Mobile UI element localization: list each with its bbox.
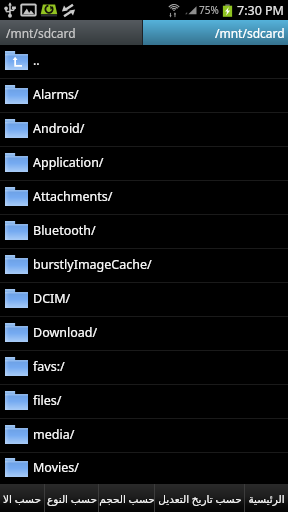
button[interactable]: Alarms/ — [0, 79, 288, 112]
button[interactable]: /mnt/sdcard — [0, 20, 142, 45]
staticText: /mnt/sdcard — [6, 25, 76, 41]
staticText: الرئيسية — [248, 493, 285, 505]
staticText: files/ — [33, 392, 62, 409]
button[interactable]: Bluetooth/ — [0, 215, 288, 248]
other: Data transfer active — [61, 3, 76, 18]
staticText: burstlyImageCache/ — [33, 256, 152, 273]
button[interactable]: Application/ — [0, 147, 288, 180]
button[interactable]: DCIM/ — [0, 283, 288, 316]
staticText: حسب الا — [3, 492, 41, 506]
button[interactable]: حسب الحجم — [99, 484, 154, 512]
button[interactable]: Android/ — [0, 113, 288, 146]
staticText: favs:/ — [33, 358, 65, 375]
staticText: Application/ — [33, 154, 104, 171]
staticText: .. — [33, 52, 40, 69]
other: Wi-Fi signal — [166, 3, 182, 18]
staticText: Attachments/ — [33, 188, 113, 205]
button[interactable]: الرئيسية — [245, 484, 288, 512]
staticText: media/ — [33, 426, 75, 443]
button[interactable]: حسب الا — [0, 484, 44, 512]
other: USB connected — [3, 2, 17, 18]
button[interactable]: burstlyImageCache/ — [0, 249, 288, 282]
staticText: Download/ — [33, 324, 98, 341]
staticText: /mnt/sdcard — [215, 25, 285, 41]
other: Screenshot captured — [20, 3, 37, 17]
staticText: 75% — [199, 3, 219, 17]
staticText: Movies/ — [33, 459, 79, 476]
other: Battery charging 75 percent — [222, 3, 233, 18]
staticText: حسب تاريخ التعديل — [158, 492, 242, 506]
button[interactable]: .. — [0, 45, 288, 78]
staticText: Android/ — [33, 120, 85, 137]
other: Android system update — [40, 3, 58, 17]
other: Mobile signal strength — [185, 4, 197, 17]
button[interactable]: /mnt/sdcard — [143, 20, 288, 45]
button[interactable]: files/ — [0, 385, 288, 418]
button[interactable]: media/ — [0, 419, 288, 452]
button[interactable]: حسب تاريخ التعديل — [155, 484, 244, 512]
button[interactable]: Attachments/ — [0, 181, 288, 214]
button[interactable]: Movies/ — [0, 453, 288, 484]
staticText: حسب الحجم — [99, 492, 154, 506]
button[interactable]: favs:/ — [0, 351, 288, 384]
staticText: Alarms/ — [33, 86, 79, 103]
button[interactable]: حسب النوع — [45, 484, 98, 512]
button[interactable]: Download/ — [0, 317, 288, 350]
staticText: 7:30 PM — [237, 2, 284, 19]
staticText: Bluetooth/ — [33, 222, 96, 239]
staticText: حسب النوع — [47, 492, 97, 506]
staticText: DCIM/ — [33, 290, 71, 307]
